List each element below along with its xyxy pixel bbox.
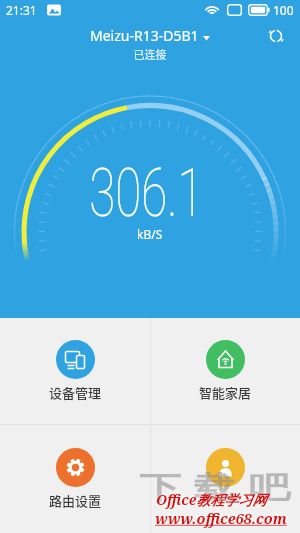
staticText: 设备管理 — [49, 383, 102, 402]
staticText: 下载吧 — [133, 469, 297, 507]
staticText: www.office68.com — [155, 508, 287, 528]
button[interactable]: 设备管理 — [0, 318, 150, 424]
staticText: 路由设置 — [49, 491, 102, 510]
button[interactable]: 路由设置 — [0, 424, 150, 533]
staticText: Office教程学习网 — [156, 490, 267, 509]
button[interactable] — [268, 28, 284, 44]
staticText: 智能家居 — [199, 383, 252, 402]
staticText: Meizu-R13-D5B1 — [90, 26, 199, 45]
staticText: kB/S — [137, 226, 163, 242]
staticText: 已连接 — [0, 46, 300, 62]
button[interactable]: Meizu-R13-D5B1 — [90, 26, 210, 45]
staticText: 21:31 — [6, 2, 37, 18]
staticText: 100 — [273, 2, 294, 18]
button[interactable]: 智能家居 — [150, 318, 300, 424]
button[interactable] — [150, 424, 300, 533]
staticText: 306.1 — [89, 155, 204, 232]
